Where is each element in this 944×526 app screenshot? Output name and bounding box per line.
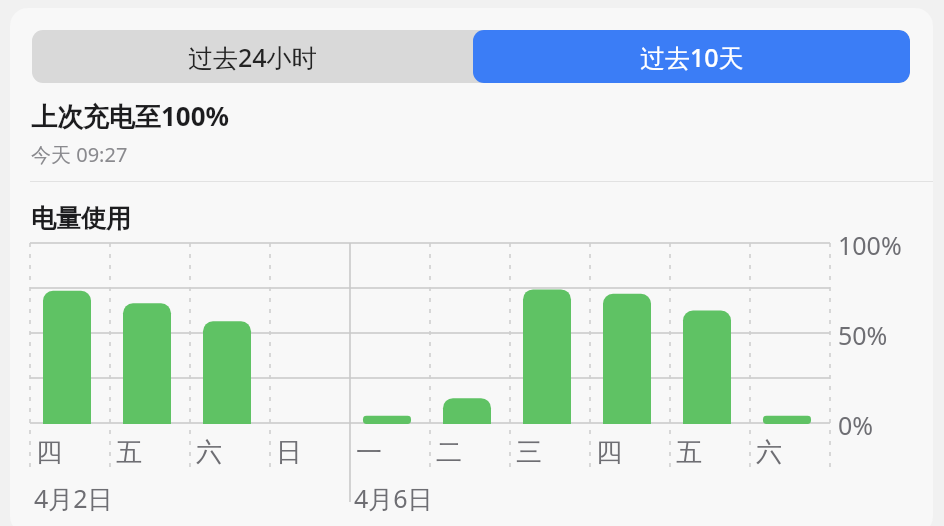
staticText: 过去10天 <box>640 40 744 74</box>
staticText: 日 <box>276 436 302 469</box>
staticText: 三 <box>516 436 542 469</box>
staticText: 五 <box>676 436 702 469</box>
staticText: 100% <box>838 228 902 262</box>
button[interactable]: 过去24小时 <box>32 30 473 83</box>
staticText: 六 <box>756 436 782 469</box>
staticText: 上次充电至100% <box>31 98 230 134</box>
staticText: 4月2日 <box>34 481 113 515</box>
staticText: 0% <box>838 408 874 442</box>
button[interactable]: 过去10天 <box>473 30 910 83</box>
staticText: 四 <box>596 436 622 469</box>
staticText: 五 <box>116 436 142 469</box>
staticText: 今天 09:27 <box>31 141 128 168</box>
staticText: 四 <box>36 436 62 469</box>
staticText: 一 <box>356 436 382 469</box>
staticText: 4月6日 <box>354 481 433 515</box>
staticText: 电量使用 <box>31 203 131 234</box>
staticText: 50% <box>838 318 888 352</box>
staticText: 二 <box>436 436 462 469</box>
staticText: 六 <box>196 436 222 469</box>
staticText: 过去24小时 <box>188 40 317 74</box>
